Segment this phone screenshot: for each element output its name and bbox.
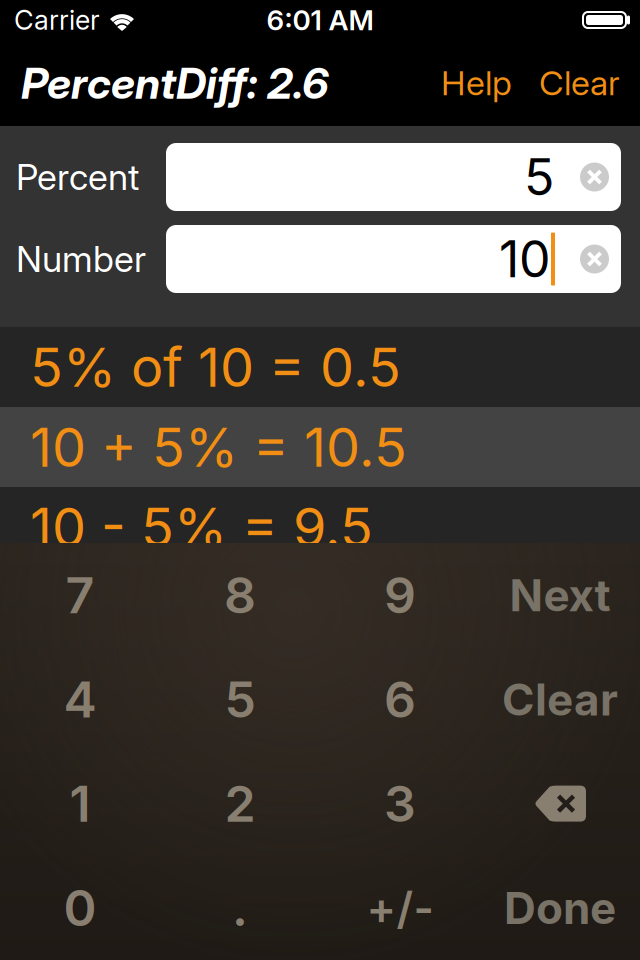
staticText: 10 - 5% = 9.5 [30, 494, 373, 560]
button[interactable]: 6 [320, 647, 480, 751]
button[interactable]: 10 [166, 225, 621, 293]
staticText: . [232, 878, 248, 938]
button[interactable]: 3 [320, 751, 480, 856]
button[interactable]: Next [480, 543, 640, 647]
staticText: 6 [384, 669, 416, 730]
button[interactable]: 5% of 10 = 0.5 [0, 327, 640, 407]
button[interactable]: 2 [160, 751, 320, 856]
button[interactable]: Clear [480, 647, 640, 751]
button[interactable]: 1 [0, 751, 160, 856]
button[interactable]: . [160, 856, 320, 960]
button[interactable]: 5 [166, 143, 621, 211]
staticText: Carrier [14, 4, 100, 36]
button[interactable]: 9 [320, 543, 480, 647]
staticText: 4 [63, 669, 96, 730]
button[interactable]: Help [441, 62, 512, 103]
staticText: Clear [502, 673, 618, 726]
staticText: 5 [524, 147, 554, 207]
button[interactable]: 7 [0, 543, 160, 647]
staticText: Done [504, 881, 616, 934]
button[interactable]: 0 [0, 856, 160, 960]
staticText: 10 [499, 229, 551, 289]
button[interactable]: 4 [0, 647, 160, 751]
staticText: 9 [384, 565, 416, 625]
staticText: 0 [63, 878, 96, 938]
button[interactable]: 10 + 5% = 10.5 [0, 407, 640, 487]
staticText: 10 + 5% = 10.5 [30, 414, 407, 480]
staticText: 1 [69, 773, 90, 834]
staticText: 5 [224, 669, 255, 730]
staticText: Number [16, 237, 146, 281]
button[interactable]: 10 - 5% = 9.5 [0, 487, 640, 567]
staticText: 3 [384, 773, 416, 834]
staticText: Clear [539, 62, 620, 103]
staticText: 5% of 10 = 0.5 [30, 334, 401, 400]
button[interactable]: 5 [160, 647, 320, 751]
staticText: PercentDiff: 2.6 [21, 57, 329, 109]
staticText: Help [441, 62, 512, 103]
button[interactable]: 8 [160, 543, 320, 647]
button[interactable]: +/- [320, 856, 480, 960]
staticText: 8 [224, 565, 256, 625]
button[interactable]: Clear text [580, 162, 609, 191]
staticText: 6:01 AM [266, 3, 373, 37]
staticText: +/- [366, 881, 433, 934]
staticText: Next [509, 568, 610, 622]
staticText: 7 [65, 565, 94, 625]
button[interactable]: Clear [539, 62, 620, 103]
button[interactable]: Done [480, 856, 640, 960]
staticText: 2 [224, 773, 255, 834]
staticText: Percent [16, 155, 139, 199]
button[interactable]: Delete [480, 751, 640, 856]
button[interactable]: Clear text [580, 244, 609, 273]
